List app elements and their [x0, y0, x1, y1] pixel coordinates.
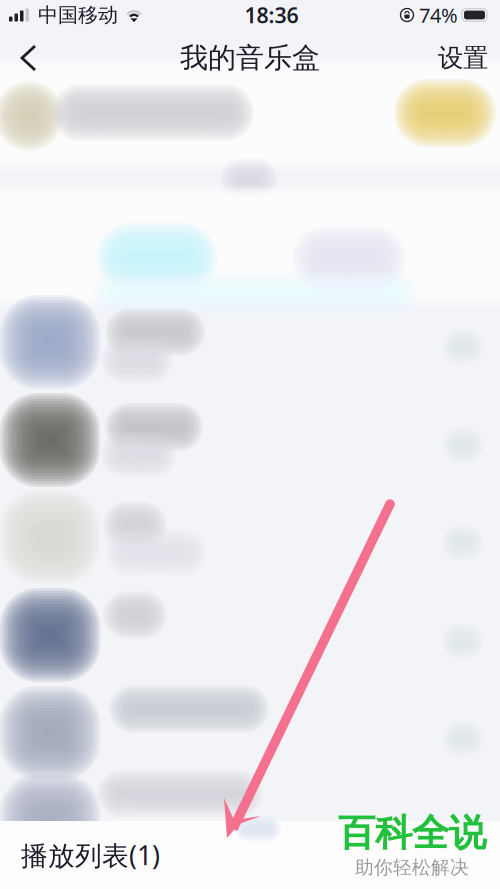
staticText: 助你轻松解决: [355, 856, 469, 879]
staticText: 我的音乐盒: [180, 41, 320, 75]
button[interactable]: 播放列表(1): [0, 821, 500, 889]
staticText: 74%: [419, 2, 458, 28]
staticText: 中国移动: [38, 3, 118, 27]
staticText: 百科全说: [338, 810, 486, 856]
staticText: 播放列表(1): [21, 837, 160, 873]
button[interactable]: 返回: [8, 34, 56, 82]
staticText: 18:36: [244, 1, 298, 29]
button[interactable]: 设置: [432, 34, 494, 82]
staticText: 设置: [438, 42, 488, 73]
